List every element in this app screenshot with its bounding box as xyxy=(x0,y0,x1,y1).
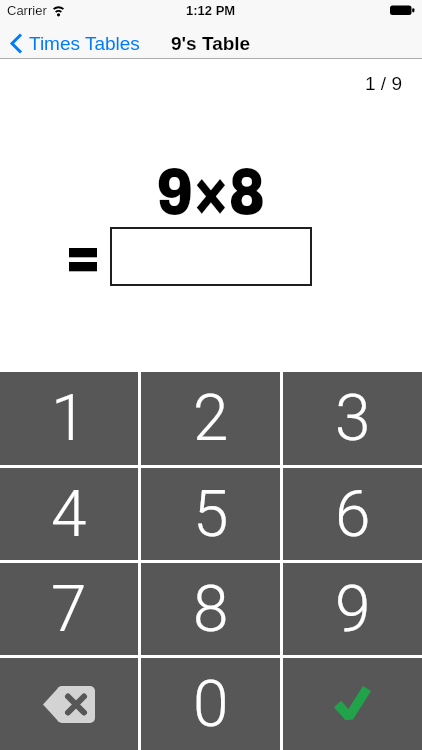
staticText: 0 xyxy=(193,667,229,742)
button[interactable] xyxy=(0,658,138,750)
button[interactable]: 0 xyxy=(141,658,280,750)
button[interactable] xyxy=(110,227,312,286)
staticText: 5 xyxy=(193,477,229,552)
staticText: 9's Table xyxy=(171,33,251,54)
staticText: 2 xyxy=(193,381,229,456)
staticText: 7 xyxy=(51,572,87,647)
staticText: 8 xyxy=(193,572,229,647)
button[interactable]: 4 xyxy=(0,468,138,560)
staticText: 6 xyxy=(335,477,371,552)
staticText: 3 xyxy=(335,381,371,456)
button[interactable]: 2 xyxy=(141,372,280,465)
button[interactable]: 8 xyxy=(141,563,280,655)
staticText: 1:12 PM xyxy=(186,3,236,18)
button[interactable]: 5 xyxy=(141,468,280,560)
button[interactable]: 7 xyxy=(0,563,138,655)
button[interactable]: 3 xyxy=(283,372,422,465)
button[interactable] xyxy=(283,658,422,750)
staticText: 9×8 xyxy=(157,155,265,228)
staticText: Carrier xyxy=(7,3,47,18)
staticText: Times Tables xyxy=(29,33,140,54)
staticText: 4 xyxy=(51,477,87,552)
button[interactable]: 1 xyxy=(0,372,138,465)
staticText: 9 xyxy=(335,572,371,647)
button[interactable]: Times Tables xyxy=(10,33,140,54)
button[interactable]: 6 xyxy=(283,468,422,560)
button[interactable]: 9 xyxy=(283,563,422,655)
staticText: 1 / 9 xyxy=(365,73,402,94)
staticText: 1 xyxy=(51,381,87,456)
